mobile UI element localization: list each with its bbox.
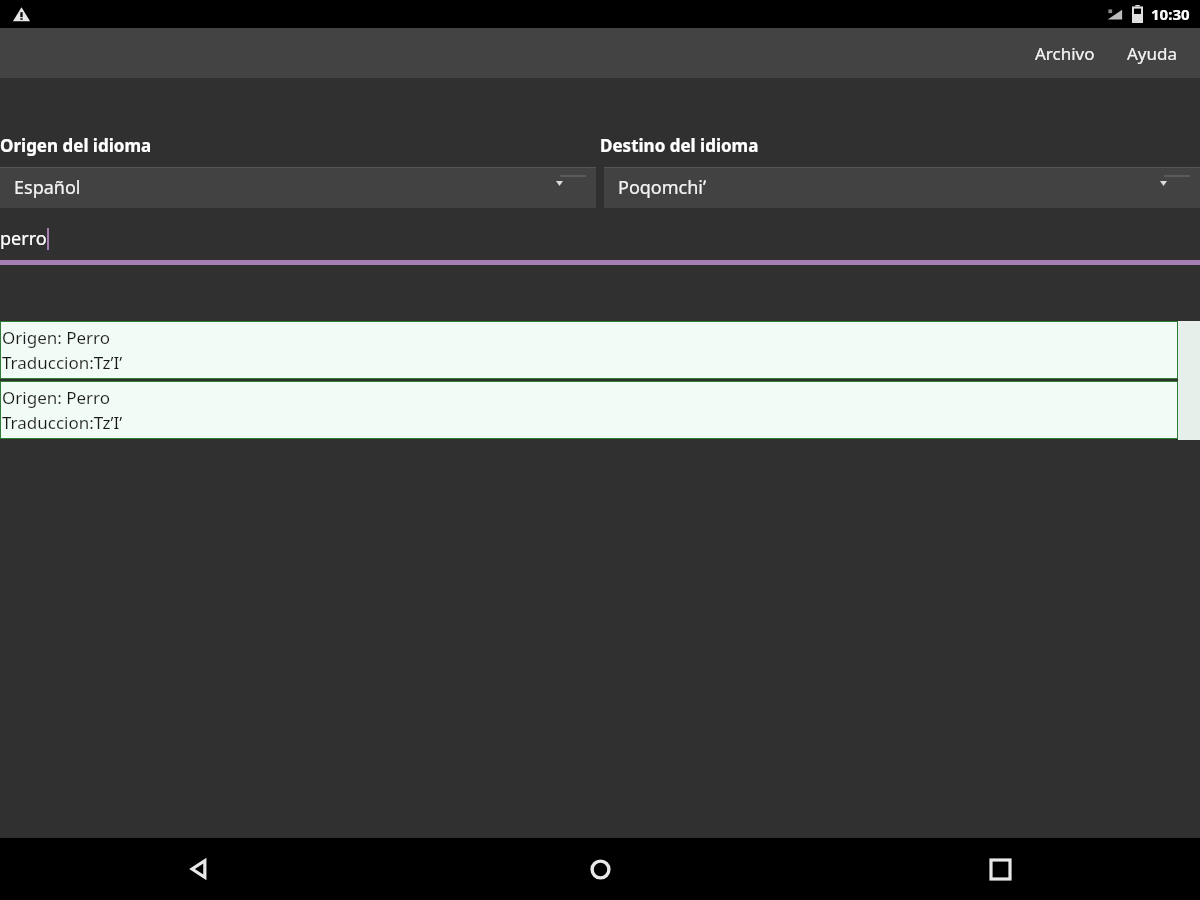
staticText: 10:30 [1151, 4, 1190, 24]
button[interactable]: Ayuda [1111, 30, 1200, 77]
button[interactable]: Origen: Perro [0, 381, 1178, 439]
staticText: Archivo [1035, 42, 1095, 65]
staticText: perro [0, 226, 47, 251]
button[interactable]: Poqomchiʼ [604, 167, 1200, 208]
staticText: Destino del idioma [600, 134, 759, 157]
staticText: Poqomchiʼ [618, 175, 707, 200]
button[interactable]: Archivo [1019, 30, 1111, 77]
button[interactable]: Home [400, 838, 800, 900]
staticText: Ayuda [1127, 42, 1178, 65]
staticText: Español [14, 175, 81, 200]
staticText: Origen: Perro [2, 386, 111, 409]
staticText: Traduccion:TzʼIʼ [2, 351, 123, 374]
staticText: Origen del idioma [0, 134, 152, 157]
button[interactable]: Origen: Perro [0, 321, 1178, 379]
button[interactable]: Recent apps [800, 838, 1200, 900]
staticText: Origen: Perro [2, 326, 111, 349]
button[interactable]: Español [0, 167, 596, 208]
button[interactable]: Back [0, 838, 400, 900]
staticText: Traduccion:TzʼIʼ [2, 411, 123, 434]
